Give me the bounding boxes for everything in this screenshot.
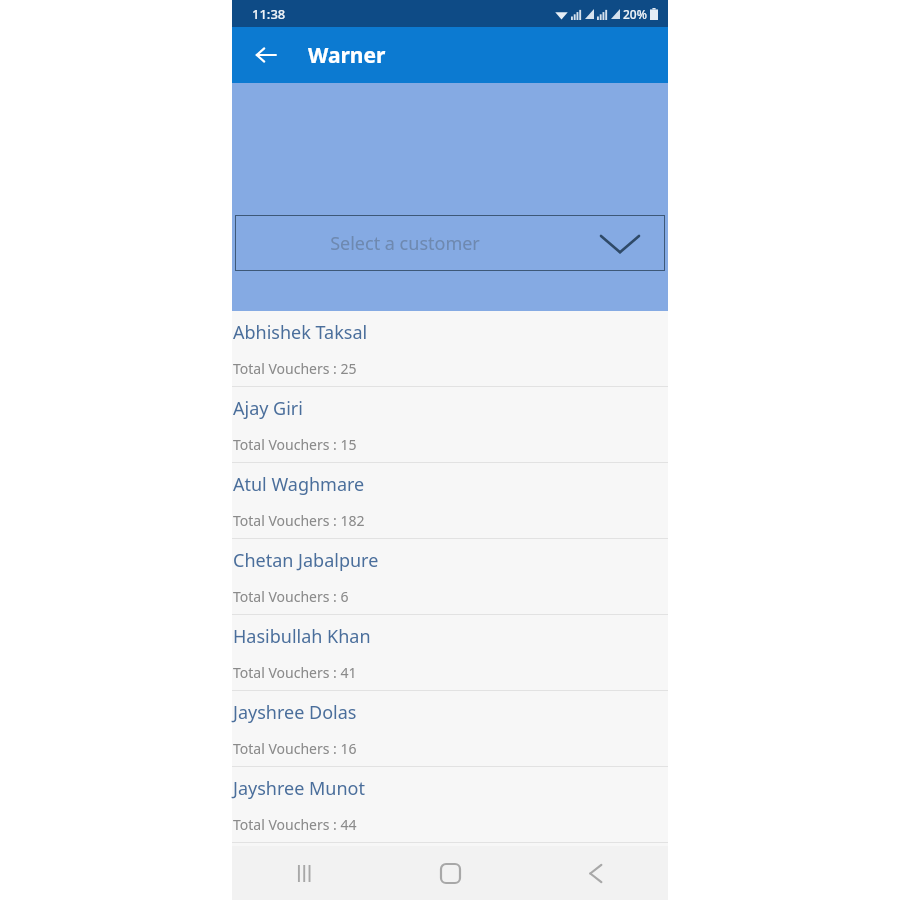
staticText: Warner	[308, 41, 386, 70]
button[interactable]: Home	[378, 846, 523, 900]
button[interactable]: Atul Waghmare	[232, 463, 668, 538]
button[interactable]: Abhishek Taksal	[232, 311, 668, 386]
button[interactable]: Back	[523, 846, 668, 900]
staticText: Total Vouchers : 25	[233, 359, 357, 378]
staticText: Jayshree Munot	[233, 776, 365, 801]
button[interactable]: Back	[246, 35, 286, 75]
staticText: Select a customer	[235, 231, 575, 256]
staticText: 11:38	[252, 5, 286, 23]
button[interactable]: Jayshree Dolas	[232, 691, 668, 766]
button[interactable]: Ajay Giri	[232, 387, 668, 462]
staticText: Hasibullah Khan	[233, 624, 371, 649]
button[interactable]: Select a customer	[235, 215, 665, 271]
button[interactable]: Hasibullah Khan	[232, 615, 668, 690]
staticText: Total Vouchers : 41	[233, 663, 357, 682]
button[interactable]: Jayshree Munot	[232, 767, 668, 842]
staticText: Total Vouchers : 15	[233, 435, 357, 454]
staticText: Total Vouchers : 44	[233, 815, 357, 834]
button[interactable]: Recent apps	[232, 846, 378, 900]
staticText: Ajay Giri	[233, 396, 303, 421]
staticText: 20%	[623, 6, 647, 22]
staticText: Atul Waghmare	[233, 472, 365, 497]
staticText: Total Vouchers : 6	[233, 587, 349, 606]
staticText: Chetan Jabalpure	[233, 548, 379, 573]
button[interactable]: Chetan Jabalpure	[232, 539, 668, 614]
staticText: Abhishek Taksal	[233, 320, 368, 345]
staticText: Total Vouchers : 16	[233, 739, 357, 758]
staticText: Jayshree Dolas	[233, 700, 357, 725]
staticText: Total Vouchers : 182	[233, 511, 365, 530]
